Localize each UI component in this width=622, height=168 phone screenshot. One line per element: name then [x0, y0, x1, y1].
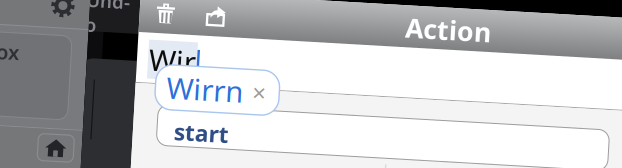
staticText: Undo — [81, 5, 125, 54]
staticText: Action — [401, 9, 487, 44]
staticText: × — [252, 84, 266, 116]
staticText: Wir — [147, 54, 194, 93]
button[interactable]: Home — [41, 154, 77, 168]
button[interactable]: Settings — [41, 8, 75, 42]
button[interactable]: Wirrn — [155, 78, 279, 123]
button[interactable]: Share — [187, 6, 235, 48]
button[interactable]: Delete — [137, 6, 185, 48]
staticText: Wirrn — [166, 81, 243, 120]
staticText: start — [176, 129, 231, 159]
